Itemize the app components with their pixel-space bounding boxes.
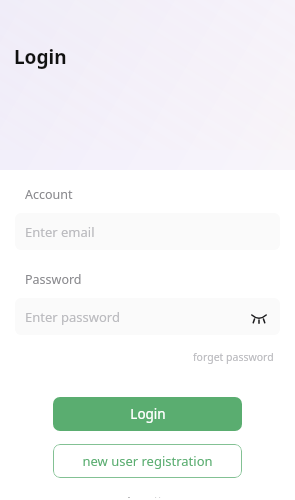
button[interactable]: forget password	[191, 348, 276, 366]
staticText: forget password	[193, 350, 274, 364]
staticText: new user registration	[82, 452, 213, 470]
button[interactable]: new user registration	[53, 444, 242, 478]
staticText: Login	[130, 405, 166, 423]
button[interactable]: Show password	[247, 305, 271, 329]
staticText: Enter email	[25, 223, 95, 241]
staticText: Enter password	[25, 308, 120, 326]
staticText: Password	[25, 271, 82, 288]
button[interactable]: solo pattern	[111, 491, 185, 500]
button[interactable]: Enter password	[15, 298, 280, 335]
button[interactable]: Login	[53, 397, 242, 431]
button[interactable]: Enter email	[15, 213, 280, 250]
staticText: Login	[14, 44, 67, 70]
staticText: Account	[25, 186, 73, 203]
staticText: solo pattern	[115, 493, 181, 498]
